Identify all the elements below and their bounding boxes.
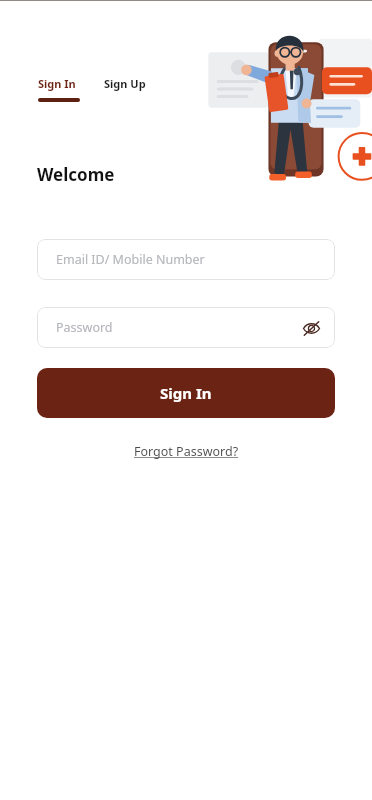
staticText: Sign In: [160, 383, 212, 403]
staticText: Welcome: [37, 163, 115, 186]
button[interactable]: Email ID/ Mobile Number: [37, 239, 335, 280]
button[interactable]: Forgot Password?: [128, 440, 245, 463]
staticText: Sign Up: [104, 76, 146, 91]
staticText: Forgot Password?: [134, 443, 239, 460]
staticText: Email ID/ Mobile Number: [56, 251, 205, 268]
button[interactable]: Show password: [296, 313, 326, 343]
staticText: Sign In: [38, 76, 76, 91]
staticText: Password: [56, 319, 113, 336]
button[interactable]: Sign In: [37, 368, 335, 418]
button[interactable]: Sign Up: [103, 74, 147, 93]
button[interactable]: Sign In: [37, 74, 81, 104]
button[interactable]: Password: [37, 307, 335, 348]
